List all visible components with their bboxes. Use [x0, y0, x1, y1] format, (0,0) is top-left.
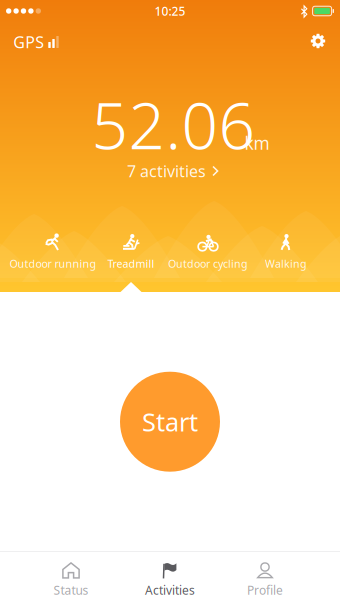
button[interactable]: Profile [222, 558, 308, 602]
staticText: km [244, 131, 269, 154]
button[interactable]: Activities [127, 558, 213, 602]
button[interactable]: Start [120, 372, 220, 472]
staticText: Walking [265, 256, 307, 271]
button[interactable]: Status [28, 558, 114, 602]
staticText: 7 activities [127, 160, 206, 182]
staticText: Start [142, 405, 198, 438]
staticText: Treadmill [107, 256, 154, 271]
staticText: Profile [247, 582, 283, 598]
staticText: Activities [145, 582, 195, 598]
button[interactable]: Settings [303, 26, 332, 55]
staticText: Outdoor cycling [168, 256, 248, 271]
button[interactable]: 7 activities [121, 157, 225, 185]
button[interactable]: Walking [256, 228, 316, 274]
staticText: 10:25 [154, 3, 185, 19]
button[interactable]: Outdoor cycling [159, 228, 257, 274]
staticText: Status [53, 582, 88, 598]
staticText: GPS [13, 31, 44, 53]
button[interactable]: Treadmill [98, 228, 164, 274]
button[interactable]: Outdoor running [3, 228, 103, 274]
staticText: 52.06 [91, 82, 255, 167]
staticText: Outdoor running [9, 256, 96, 271]
